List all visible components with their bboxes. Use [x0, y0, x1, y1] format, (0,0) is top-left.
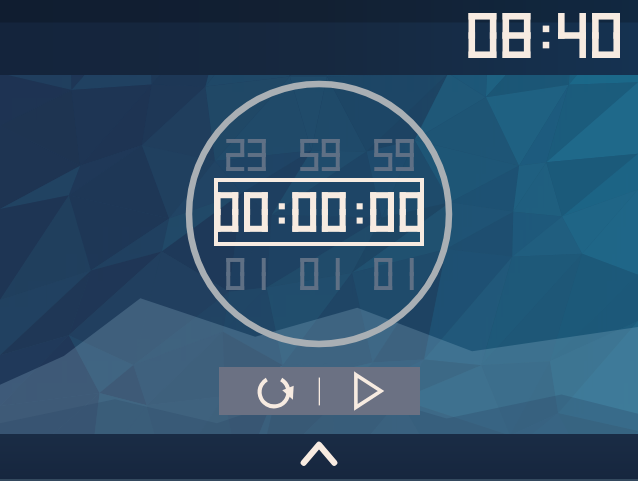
button[interactable]: Reset [219, 367, 319, 415]
button[interactable]: Current time 08:40 [502, 0, 622, 75]
button[interactable]: Start [320, 367, 420, 415]
button[interactable]: Expand [274, 434, 364, 481]
